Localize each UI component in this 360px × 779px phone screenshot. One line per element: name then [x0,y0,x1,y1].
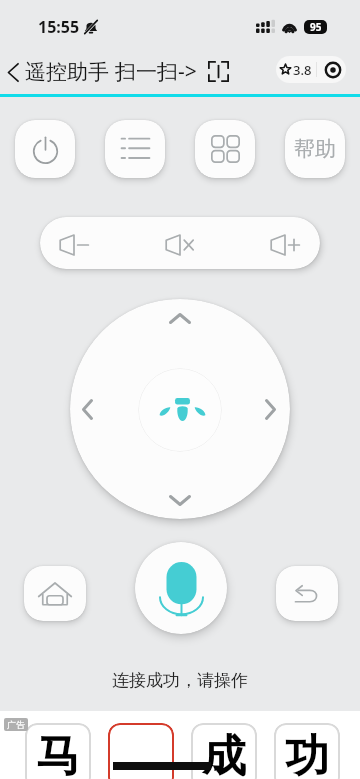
button[interactable]: OK [138,368,222,452]
staticText: 3.8 [293,61,312,79]
staticText: 15:55 [38,16,80,38]
button[interactable]: 帮助 [285,120,345,178]
staticText: 95 [310,20,322,34]
button[interactable]: Menu [105,120,165,178]
button[interactable]: Home [24,566,86,621]
button[interactable]: 3.8 [276,56,316,83]
staticText: 遥控助手 [25,59,109,85]
staticText: 连接成功，请操作 [112,670,248,691]
button[interactable]: Right [250,386,290,432]
staticText: 广告 [7,719,25,730]
button[interactable]: Back [1,60,25,84]
button[interactable]: Left [70,386,110,432]
button[interactable]: Power [15,120,75,178]
staticText: 成 [202,729,246,779]
button[interactable]: Volume down [40,217,150,269]
staticText: 功 [285,729,329,779]
button[interactable]: Apps [195,120,255,178]
staticText: 扫一扫-> [115,57,197,86]
button[interactable]: Volume up [225,217,320,269]
button[interactable]: Up [157,299,203,339]
staticText: 帮助 [294,136,336,162]
button[interactable]: Record [317,56,346,83]
button[interactable]: Down [157,479,203,519]
button[interactable]: Mute [150,217,225,269]
staticText: 马 [36,729,80,779]
button[interactable]: 扫一扫-> [115,57,229,86]
button[interactable]: Voice [135,542,227,634]
button[interactable]: Back [276,566,338,621]
